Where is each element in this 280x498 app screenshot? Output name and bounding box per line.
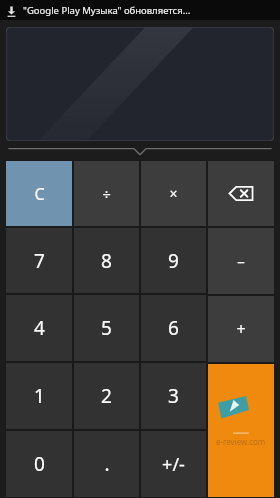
button[interactable]: C: [6, 161, 72, 226]
staticText: 9: [168, 248, 179, 274]
button[interactable]: 0: [6, 431, 72, 497]
staticText: 7: [34, 248, 45, 274]
staticText: +: [236, 318, 246, 340]
staticText: .: [104, 451, 110, 477]
button[interactable]: [6, 27, 274, 141]
button[interactable]: +: [208, 296, 274, 362]
staticText: C: [34, 183, 45, 205]
button[interactable]: 1: [6, 363, 72, 429]
button[interactable]: 4: [6, 295, 72, 361]
button[interactable]: 2: [74, 363, 139, 429]
staticText: 0: [34, 451, 45, 477]
button[interactable]: 7: [6, 228, 72, 293]
staticText: ×: [169, 184, 178, 203]
button[interactable]: .: [74, 431, 139, 497]
staticText: 8: [101, 248, 112, 274]
staticText: "Google Play Музыка" обновляется...: [23, 4, 191, 17]
button[interactable]: –: [208, 228, 274, 294]
staticText: 1: [34, 383, 45, 409]
staticText: 4: [34, 315, 45, 341]
button[interactable]: 3: [141, 363, 206, 429]
button[interactable]: Equals: [208, 364, 274, 497]
staticText: 5: [101, 315, 112, 341]
button[interactable]: ÷: [74, 161, 139, 226]
staticText: 3: [168, 383, 179, 409]
button[interactable]: 6: [141, 295, 206, 361]
staticText: 2: [101, 383, 112, 409]
staticText: +/-: [162, 452, 185, 477]
button[interactable]: 9: [141, 228, 206, 293]
button[interactable]: +/-: [141, 431, 206, 497]
button[interactable]: 5: [74, 295, 139, 361]
staticText: ÷: [102, 184, 111, 204]
button[interactable]: Backspace: [208, 161, 274, 226]
other: Download: [6, 5, 17, 17]
button[interactable]: ×: [141, 161, 206, 226]
staticText: e-review.com: [216, 436, 266, 447]
button[interactable]: 8: [74, 228, 139, 293]
staticText: –: [237, 251, 245, 271]
staticText: 6: [168, 315, 179, 341]
